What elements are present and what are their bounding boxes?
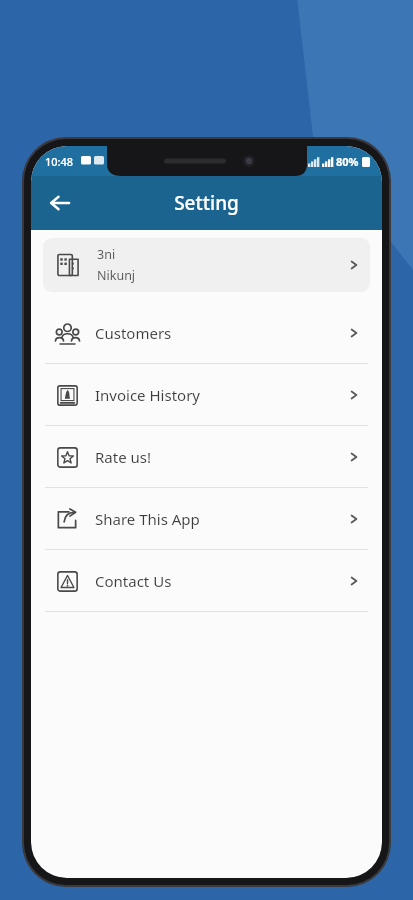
staticText: Nikunj	[97, 267, 136, 284]
button[interactable]: Rate us!	[43, 426, 370, 487]
button[interactable]: Contact Us	[43, 550, 370, 611]
staticText: Rate us!	[95, 447, 348, 467]
staticText: Contact Us	[95, 571, 348, 591]
button[interactable]: Customers	[43, 302, 370, 363]
button[interactable]: Invoice History	[43, 364, 370, 425]
staticText: 3ni	[97, 246, 116, 263]
button[interactable]: Share This App	[43, 488, 370, 549]
staticText: 10:48	[45, 154, 74, 169]
staticText: Invoice History	[95, 385, 348, 405]
staticText: Customers	[95, 323, 348, 343]
staticText: 80%	[336, 154, 359, 169]
staticText: Share This App	[95, 509, 348, 529]
staticText: Setting	[174, 190, 239, 216]
button[interactable]: Back	[37, 180, 83, 226]
button[interactable]: 3ni	[43, 238, 370, 292]
